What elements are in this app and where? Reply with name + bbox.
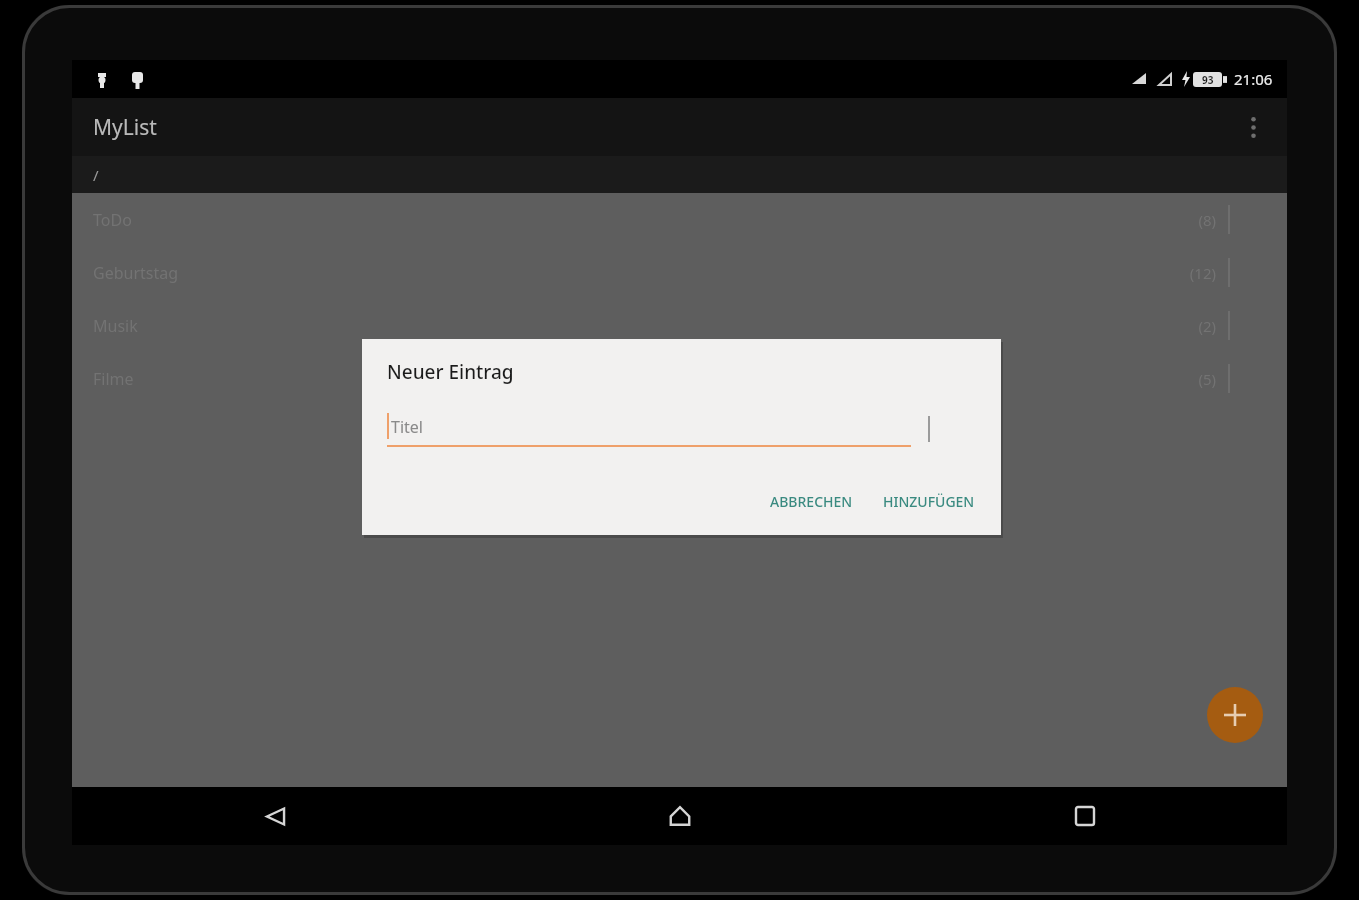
staticText: Neuer Eintrag (387, 359, 514, 385)
staticText: Titel (391, 416, 423, 438)
staticText: Geburtstag (93, 262, 179, 284)
staticText: 93 (1202, 73, 1214, 87)
button[interactable]: Titel (387, 413, 1001, 447)
staticText: MyList (93, 113, 157, 142)
button[interactable]: Musik (72, 299, 1287, 352)
staticText: Musik (93, 315, 138, 337)
button[interactable]: Filme (72, 352, 1287, 405)
staticText: HINZUFÜGEN (883, 492, 975, 511)
button[interactable]: More options (1229, 103, 1277, 151)
staticText: / (93, 165, 99, 185)
button[interactable]: Add list (1207, 687, 1263, 743)
staticText: 21:06 (1234, 69, 1273, 89)
staticText: ToDo (93, 209, 132, 231)
staticText: (2) (1164, 316, 1216, 336)
button[interactable]: ABBRECHEN (760, 486, 863, 517)
button[interactable]: Back (251, 792, 299, 840)
staticText: (12) (1164, 263, 1216, 283)
button[interactable]: Recent apps (1061, 792, 1109, 840)
staticText: Filme (93, 368, 134, 390)
button[interactable]: HINZUFÜGEN (873, 486, 985, 517)
staticText: (5) (1164, 369, 1216, 389)
button[interactable]: Home (656, 792, 704, 840)
staticText: (8) (1164, 210, 1216, 230)
staticText: ABBRECHEN (770, 492, 853, 511)
